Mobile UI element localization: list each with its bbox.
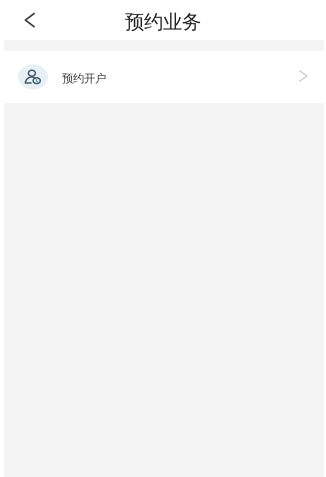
staticText: 预约业务 [125,10,201,34]
button[interactable]: 预约开户 [0,51,326,103]
staticText: 预约开户 [62,71,106,86]
button[interactable]: Back [0,0,54,40]
